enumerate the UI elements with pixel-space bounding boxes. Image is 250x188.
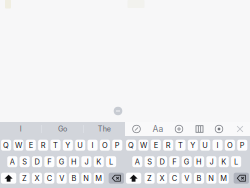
button[interactable]: M bbox=[219, 173, 229, 184]
button[interactable]: D bbox=[32, 156, 42, 167]
button[interactable]: I bbox=[87, 140, 98, 151]
button[interactable]: L bbox=[106, 156, 116, 167]
staticText: W bbox=[15, 141, 22, 150]
button[interactable]: B bbox=[194, 173, 204, 184]
staticText: I bbox=[91, 141, 93, 150]
staticText: D bbox=[159, 157, 164, 166]
staticText: T bbox=[178, 141, 183, 150]
button[interactable]: V bbox=[182, 173, 192, 184]
button[interactable]: J bbox=[81, 156, 91, 167]
staticText: Z bbox=[22, 174, 27, 183]
button[interactable]: H bbox=[194, 156, 204, 167]
button[interactable]: Q bbox=[1, 140, 11, 151]
staticText: L bbox=[109, 157, 113, 166]
staticText: Y bbox=[190, 141, 195, 150]
button[interactable]: X bbox=[32, 173, 42, 184]
staticText: I bbox=[217, 141, 219, 150]
staticText: V bbox=[184, 174, 189, 183]
button[interactable]: Camera bbox=[211, 122, 227, 136]
button[interactable]: U bbox=[75, 140, 85, 151]
button[interactable]: W bbox=[138, 140, 148, 151]
staticText: X bbox=[34, 174, 39, 183]
button[interactable]: E bbox=[151, 140, 161, 151]
staticText: W bbox=[140, 141, 147, 150]
staticText: G bbox=[184, 157, 190, 166]
button[interactable]: Shift bbox=[1, 173, 16, 184]
staticText: O bbox=[102, 141, 108, 150]
button[interactable]: E bbox=[26, 140, 36, 151]
staticText: R bbox=[41, 141, 46, 150]
button[interactable]: K bbox=[219, 156, 229, 167]
staticText: Y bbox=[65, 141, 70, 150]
staticText: T bbox=[53, 141, 58, 150]
button[interactable]: U bbox=[200, 140, 210, 151]
button[interactable]: Delete bbox=[109, 173, 124, 184]
staticText: M bbox=[220, 174, 227, 183]
button[interactable]: Z bbox=[145, 173, 155, 184]
button[interactable]: J bbox=[206, 156, 216, 167]
button[interactable]: G bbox=[57, 156, 67, 167]
button[interactable]: Z bbox=[20, 173, 30, 184]
button[interactable]: F bbox=[44, 156, 54, 167]
button[interactable]: M bbox=[94, 173, 104, 184]
button[interactable]: A bbox=[7, 156, 17, 167]
button[interactable]: Y bbox=[63, 140, 73, 151]
button[interactable]: Text style bbox=[150, 122, 166, 136]
button[interactable]: P bbox=[237, 140, 247, 151]
button[interactable]: G bbox=[182, 156, 192, 167]
staticText: F bbox=[172, 157, 176, 166]
staticText: O bbox=[227, 141, 233, 150]
staticText: L bbox=[234, 157, 238, 166]
staticText: A bbox=[135, 157, 140, 166]
button[interactable]: Go bbox=[42, 122, 83, 136]
button[interactable]: Insert bbox=[171, 122, 187, 136]
staticText: Z bbox=[147, 174, 152, 183]
button[interactable]: Close bbox=[232, 122, 248, 136]
button[interactable]: Q bbox=[126, 140, 136, 151]
button[interactable]: T bbox=[175, 140, 185, 151]
button[interactable]: K bbox=[94, 156, 104, 167]
button[interactable]: S bbox=[20, 156, 30, 167]
button[interactable]: O bbox=[100, 140, 110, 151]
button[interactable]: Format bbox=[128, 122, 144, 136]
button[interactable]: X bbox=[157, 173, 167, 184]
button[interactable]: Table bbox=[191, 122, 207, 136]
staticText: J bbox=[209, 157, 213, 166]
button[interactable]: R bbox=[163, 140, 173, 151]
button[interactable]: P bbox=[112, 140, 122, 151]
button[interactable]: R bbox=[38, 140, 48, 151]
button[interactable]: H bbox=[69, 156, 79, 167]
button[interactable]: W bbox=[13, 140, 23, 151]
button[interactable]: O bbox=[225, 140, 235, 151]
staticText: Q bbox=[3, 141, 9, 150]
button[interactable]: I bbox=[212, 140, 223, 151]
button[interactable]: I bbox=[0, 122, 42, 136]
staticText: C bbox=[172, 174, 177, 183]
button[interactable]: C bbox=[169, 173, 179, 184]
button[interactable]: V bbox=[57, 173, 67, 184]
button[interactable]: A bbox=[132, 156, 142, 167]
button[interactable]: S bbox=[145, 156, 155, 167]
button[interactable]: T bbox=[50, 140, 61, 151]
button[interactable]: N bbox=[206, 173, 216, 184]
button[interactable]: B bbox=[69, 173, 79, 184]
button[interactable]: L bbox=[231, 156, 241, 167]
staticText: H bbox=[71, 157, 77, 166]
staticText: P bbox=[240, 141, 245, 150]
staticText: G bbox=[59, 157, 65, 166]
staticText: Q bbox=[128, 141, 134, 150]
staticText: F bbox=[47, 157, 51, 166]
button[interactable]: Delete bbox=[234, 173, 249, 184]
staticText: B bbox=[71, 174, 76, 183]
staticText: U bbox=[202, 141, 208, 150]
button[interactable]: Shift bbox=[126, 173, 141, 184]
button[interactable]: F bbox=[169, 156, 179, 167]
button[interactable]: More bbox=[112, 105, 123, 116]
button[interactable]: N bbox=[81, 173, 91, 184]
staticText: J bbox=[84, 157, 88, 166]
button[interactable]: The bbox=[83, 122, 125, 136]
button[interactable]: Y bbox=[188, 140, 198, 151]
staticText: K bbox=[96, 157, 101, 166]
button[interactable]: C bbox=[44, 173, 54, 184]
button[interactable]: D bbox=[157, 156, 167, 167]
